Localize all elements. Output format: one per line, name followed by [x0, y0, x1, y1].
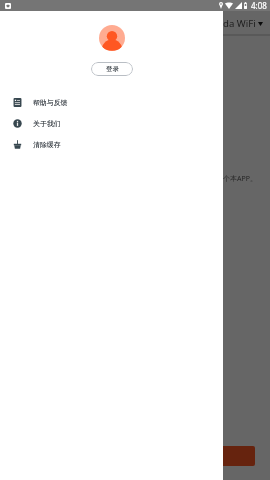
- button[interactable]: 清除缓存: [0, 134, 223, 155]
- staticText: 4:08: [251, 0, 267, 11]
- staticText: 清除缓存: [33, 140, 61, 149]
- button[interactable]: 登录: [91, 62, 133, 76]
- staticText: 登录: [106, 65, 119, 73]
- button[interactable]: 帮助与反馈: [0, 92, 223, 113]
- button[interactable]: 确定: [15, 446, 255, 466]
- staticText: 帮助与反馈: [33, 98, 68, 107]
- staticText: Tenda WiFi: [207, 17, 256, 30]
- button[interactable]: 关于我们: [0, 113, 223, 134]
- staticText: 关于我们: [33, 119, 61, 128]
- button[interactable]: Profile avatar: [99, 25, 125, 51]
- staticText: 清除缓存: [33, 140, 61, 149]
- staticText: 关于我们: [33, 119, 61, 128]
- staticText: 登录: [106, 65, 119, 73]
- staticText: 帮助与反馈: [33, 98, 68, 107]
- staticText: 请先将手机连接到路由器发出的无线信号，然后重新打开并使用这个本APP。: [20, 174, 257, 184]
